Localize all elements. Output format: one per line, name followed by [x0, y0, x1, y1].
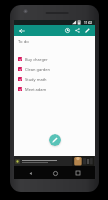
button[interactable]: Meet adam — [14, 84, 95, 94]
button[interactable]: Back — [25, 167, 37, 179]
staticText: To do — [18, 39, 29, 45]
button[interactable]: Clean garden — [14, 64, 95, 74]
staticText: Meet adam — [25, 87, 47, 92]
button[interactable]: Back — [17, 26, 26, 35]
button[interactable]: Buy charger — [14, 54, 95, 64]
button[interactable]: Share — [73, 26, 82, 35]
button[interactable]: Edit — [83, 26, 92, 35]
staticText: Buy charger — [25, 57, 48, 62]
button[interactable]: Reminder — [63, 26, 72, 35]
button[interactable]: Recent apps — [72, 167, 84, 179]
staticText: Study math — [25, 77, 47, 82]
button[interactable]: Add task — [49, 134, 61, 146]
staticText: 11:02 — [84, 21, 93, 25]
button[interactable]: Advertisement — [14, 156, 95, 166]
button[interactable]: Home — [49, 167, 61, 179]
staticText: Clean garden — [25, 67, 51, 72]
button[interactable]: Study math — [14, 74, 95, 84]
